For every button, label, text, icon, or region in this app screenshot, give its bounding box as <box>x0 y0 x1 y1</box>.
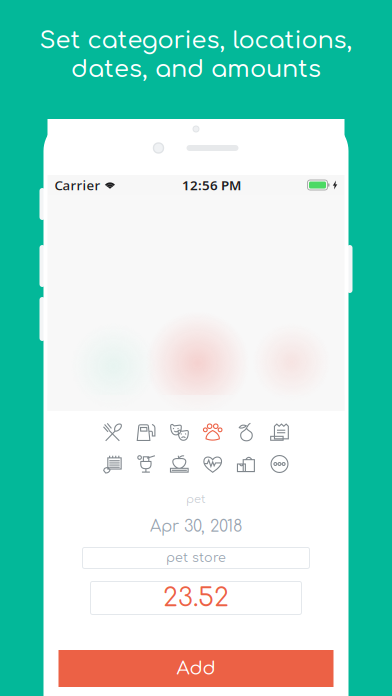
button[interactable]: pet store <box>82 547 309 568</box>
button[interactable]: Fuel <box>134 420 158 444</box>
button[interactable]: Groceries <box>234 420 258 444</box>
button[interactable]: More <box>267 452 291 476</box>
staticText: Set categories, locations, <box>39 27 352 54</box>
staticText: pet store <box>166 551 226 565</box>
button[interactable]: Add <box>58 650 333 687</box>
button[interactable]: Pet <box>201 420 225 444</box>
button[interactable]: Shopping <box>234 452 258 476</box>
staticText: Apr 30, 2018 <box>150 518 242 535</box>
staticText: 12:56 PM <box>182 176 241 194</box>
button[interactable]: Entertainment <box>167 420 191 444</box>
staticText: dates, and amounts <box>71 56 321 83</box>
button[interactable]: 23.52 <box>90 581 301 614</box>
staticText: Add <box>176 658 215 679</box>
button[interactable]: Notes <box>100 452 124 476</box>
button[interactable]: Education <box>167 452 191 476</box>
button[interactable]: Drinks <box>134 452 158 476</box>
staticText: pet <box>186 493 206 506</box>
button[interactable]: Restaurant <box>100 420 124 444</box>
staticText: Carrier <box>54 176 100 194</box>
staticText: 23.52 <box>163 584 229 612</box>
button[interactable]: Bills <box>267 420 291 444</box>
button[interactable]: Health <box>201 452 225 476</box>
button[interactable]: Apr 30, 2018 <box>130 514 262 539</box>
